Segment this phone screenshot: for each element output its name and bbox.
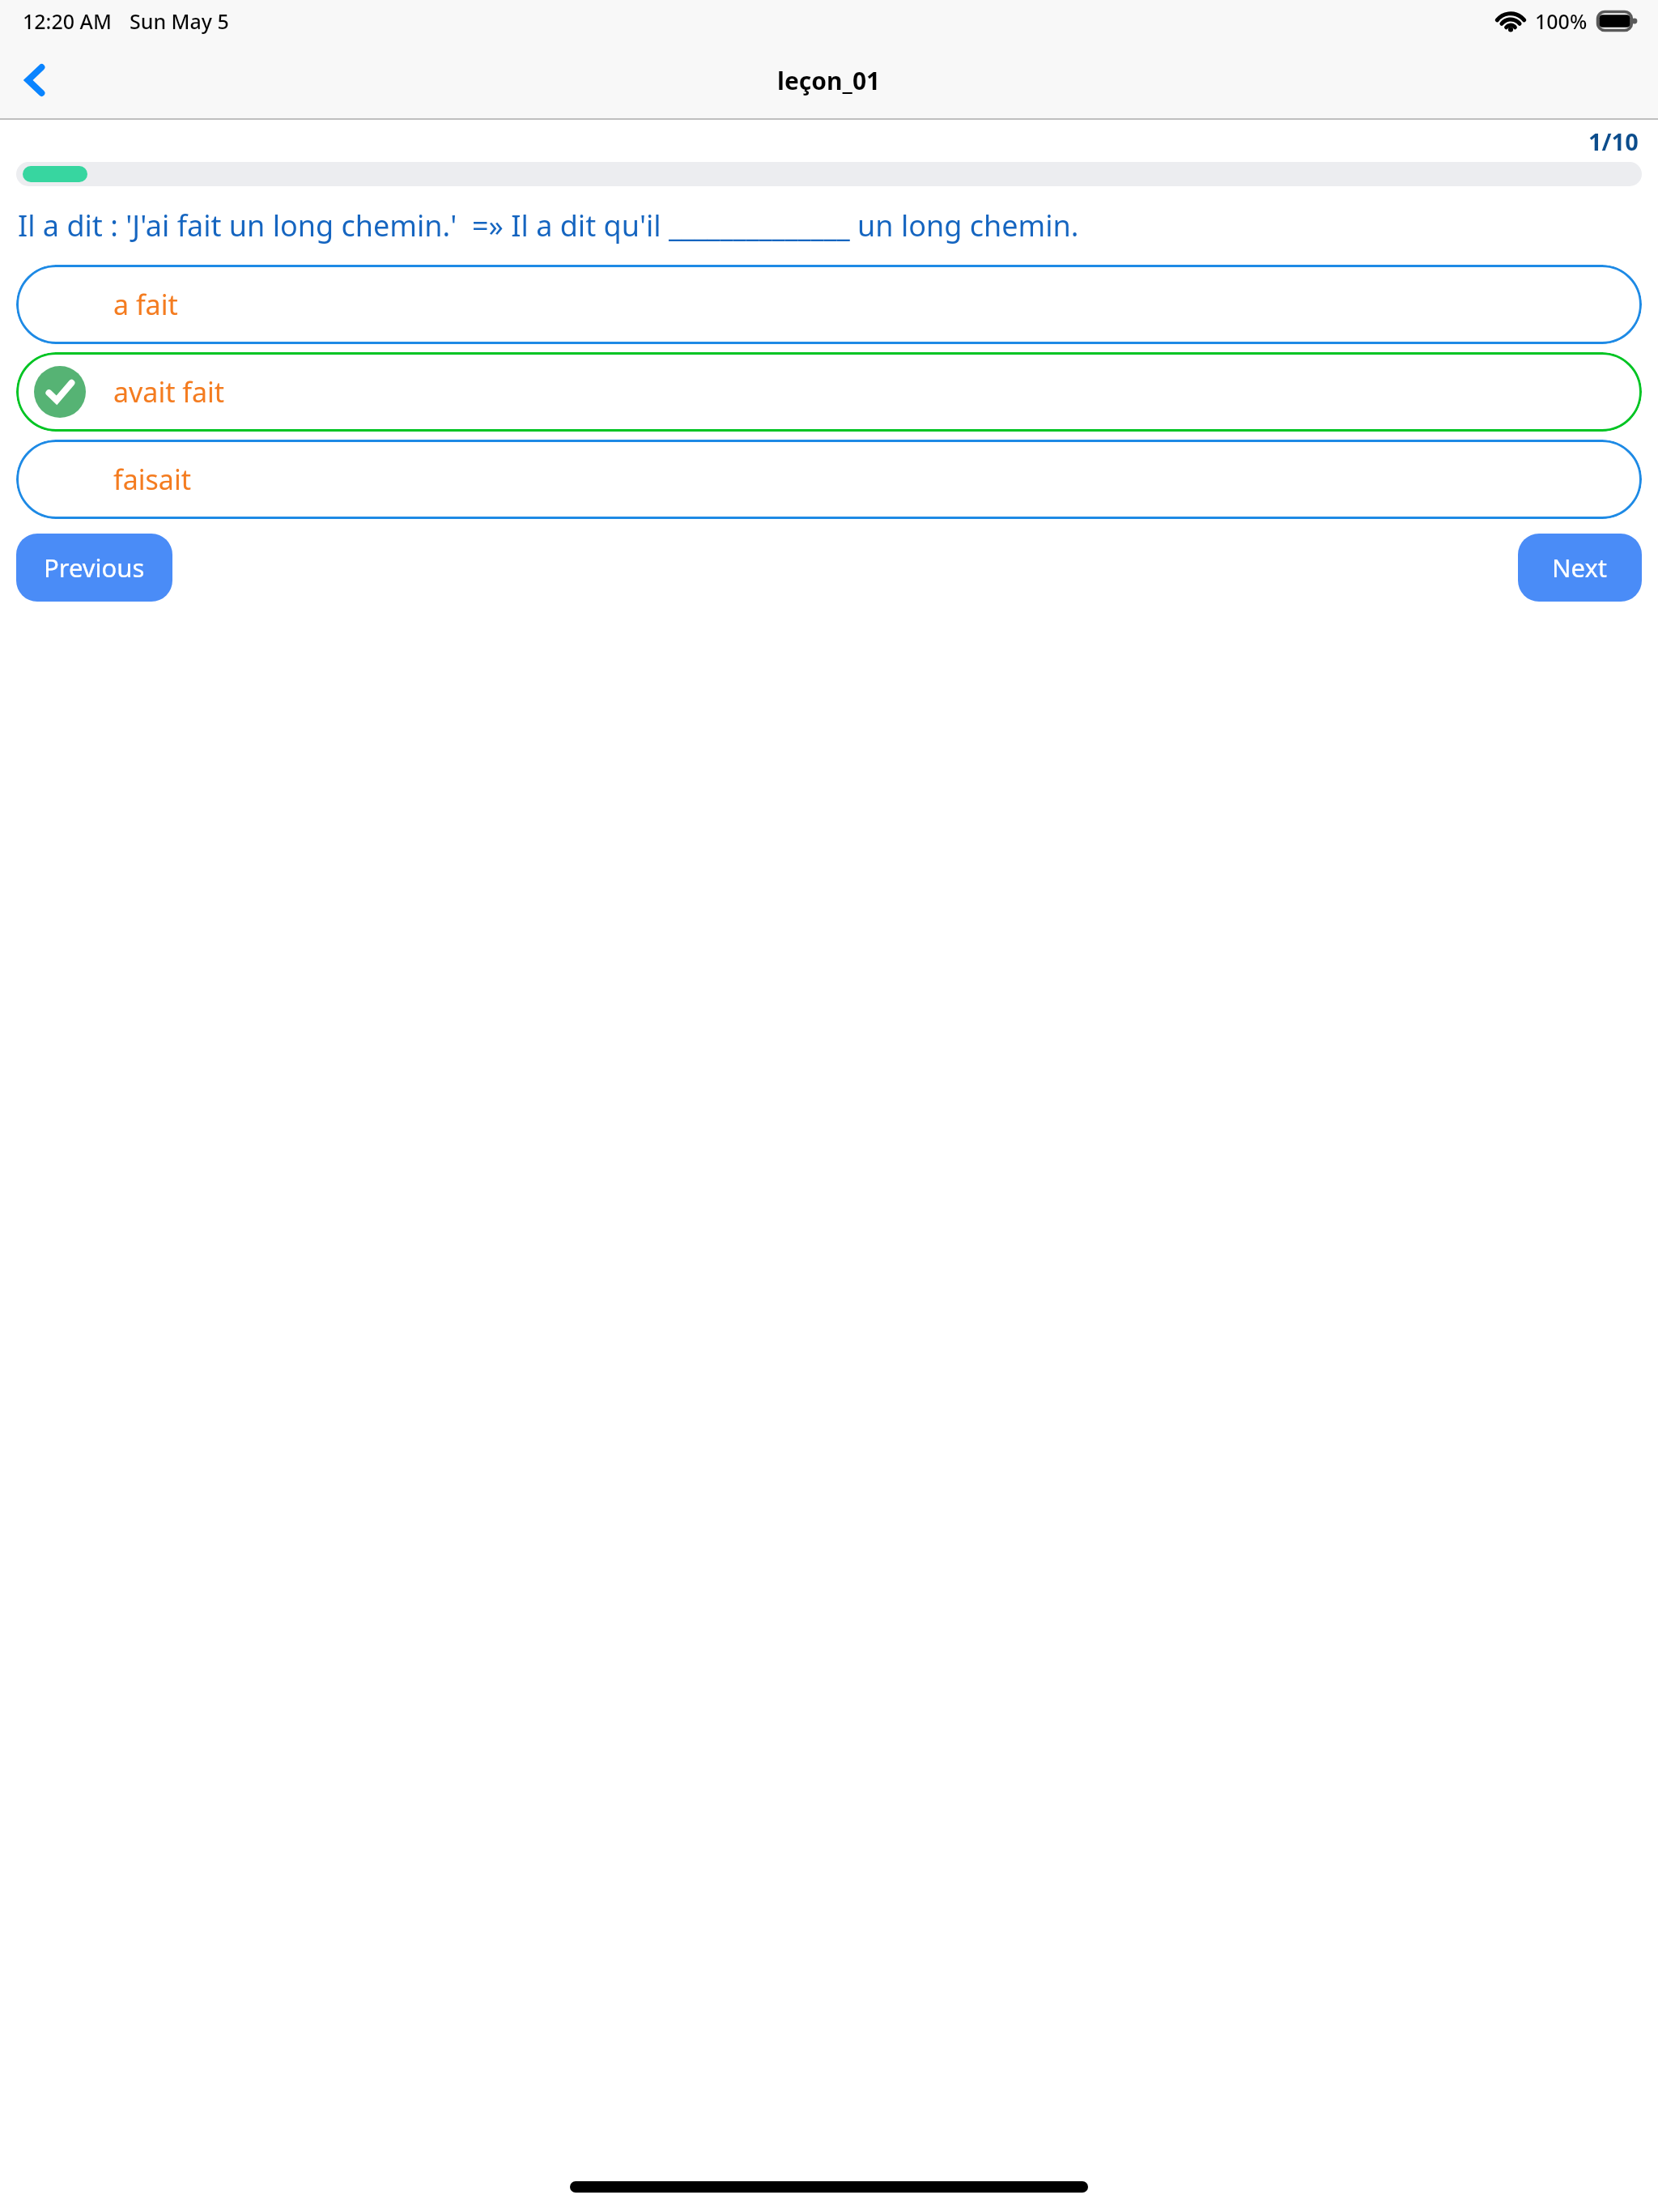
staticText: leçon_01 [777, 64, 881, 97]
staticText: 100% [1535, 7, 1588, 35]
staticText: faisait [113, 461, 191, 498]
staticText: Il a dit : 'J'ai fait un long chemin.' =… [18, 206, 1079, 245]
button[interactable]: Next [1518, 534, 1642, 602]
staticText: 12:20 AM [23, 7, 112, 35]
button[interactable]: Back [0, 45, 70, 115]
button[interactable]: a fait [16, 265, 1642, 344]
button[interactable]: avait fait [16, 352, 1642, 432]
staticText: Sun May 5 [130, 7, 229, 35]
staticText: Previous [44, 551, 145, 585]
button[interactable]: faisait [16, 440, 1642, 519]
staticText: Next [1552, 551, 1608, 585]
staticText: a fait [113, 286, 178, 323]
button[interactable]: Previous [16, 534, 172, 602]
staticText: 1/10 [1588, 125, 1639, 157]
staticText: avait fait [113, 373, 225, 410]
